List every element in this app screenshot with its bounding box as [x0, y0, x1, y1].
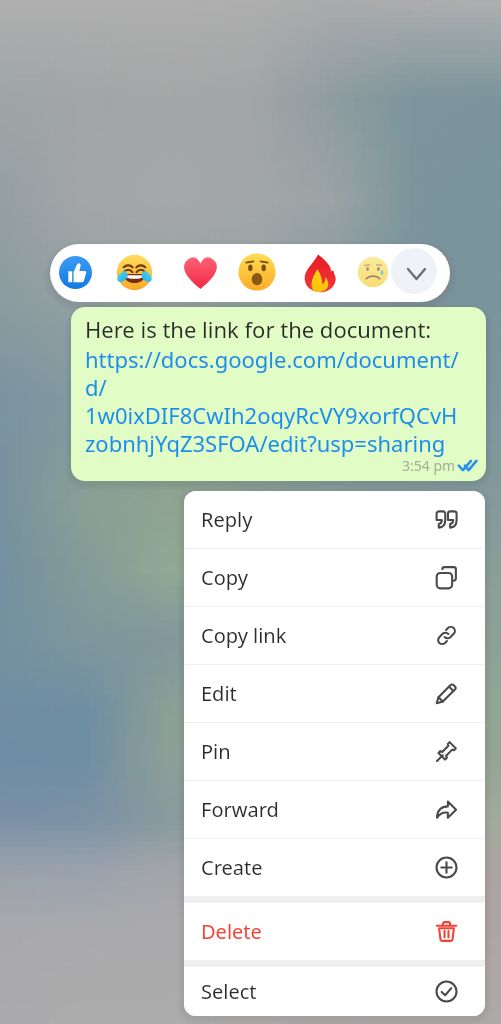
button[interactable]: Create [184, 839, 485, 896]
button[interactable]: Forward [184, 781, 485, 838]
button[interactable]: Wow [229, 244, 285, 301]
button[interactable]: Copy link [184, 607, 485, 664]
staticText: 3:54 pm [402, 456, 456, 475]
staticText: Here is the link for the document: [85, 314, 432, 344]
button[interactable]: Pin [184, 723, 485, 780]
button[interactable]: Love [172, 244, 228, 302]
button[interactable]: Delete [184, 903, 485, 960]
staticText: Select [201, 978, 257, 1005]
button[interactable]: Edit [184, 665, 485, 722]
button[interactable]: Sad [345, 244, 401, 301]
button[interactable]: Copy [184, 549, 485, 606]
staticText: Copy link [201, 622, 287, 649]
button[interactable]: More reactions [391, 248, 437, 294]
button[interactable]: Laugh [106, 244, 162, 301]
staticText: Delete [201, 918, 262, 945]
button[interactable]: Select [184, 967, 485, 1016]
staticText: Forward [201, 796, 279, 823]
button[interactable]: Reply [184, 491, 485, 548]
staticText: Copy [201, 564, 248, 591]
staticText: Edit [201, 680, 237, 707]
staticText: Pin [201, 738, 231, 765]
staticText: https://docs.google.com/document/ d/ 1w0… [85, 344, 459, 458]
button[interactable]: Like [50, 244, 103, 301]
staticText: Create [201, 854, 263, 881]
staticText: Reply [201, 506, 253, 533]
button[interactable]: Fire [292, 244, 348, 302]
